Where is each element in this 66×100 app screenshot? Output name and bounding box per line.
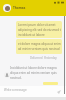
button[interactable]: et dolore magna aliqua ut enim bbox=[16, 39, 62, 54]
staticText: Incididunt ut labore dolore magna bbox=[10, 66, 57, 70]
staticText: aliqua enim ad minim veniam quis bbox=[10, 71, 57, 75]
staticText: Thomas bbox=[13, 6, 26, 10]
button[interactable] bbox=[43, 82, 58, 85]
staticText: Lorem ipsum dolor sit amet conse bbox=[18, 23, 62, 27]
staticText: et dolore magna aliqua ut enim bbox=[18, 42, 61, 46]
staticText: Delivered Yesterday bbox=[30, 56, 57, 60]
staticText: ad minim veniam quis nostrud bbox=[18, 47, 60, 51]
staticText: incididunt ut labore bbox=[18, 33, 45, 37]
button[interactable]: Send bbox=[54, 87, 63, 96]
staticText: adipiscing elit sed do eiusmod t bbox=[18, 28, 61, 32]
button[interactable]: Lorem ipsum dolor sit amet conse bbox=[16, 21, 62, 38]
staticText: Write a message bbox=[4, 88, 27, 92]
staticText: nostrud. bbox=[10, 76, 22, 80]
